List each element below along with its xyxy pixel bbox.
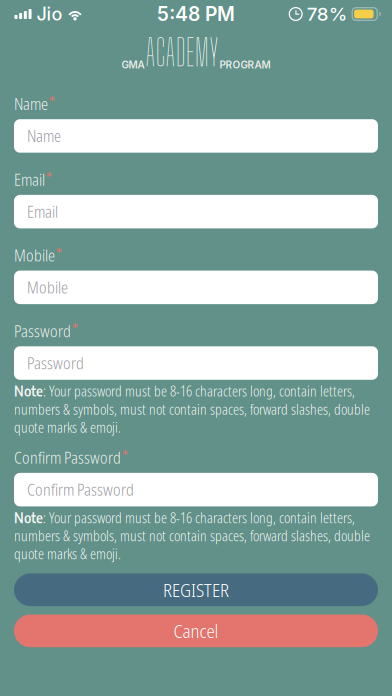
staticText: *	[48, 93, 55, 109]
staticText: *	[55, 244, 62, 261]
staticText: GMA	[121, 59, 144, 71]
staticText: *	[121, 447, 128, 463]
staticText: *	[71, 320, 78, 336]
staticText: Password	[14, 320, 71, 342]
staticText: Confirm Password	[27, 479, 134, 500]
staticText: Name	[27, 125, 61, 147]
staticText: Mobile	[27, 276, 68, 298]
staticText: ACADEMY	[145, 31, 218, 74]
staticText: PROGRAM	[219, 59, 270, 71]
staticText: Email	[27, 201, 58, 222]
staticText: 78%	[307, 3, 348, 25]
button[interactable]: Cancel	[14, 614, 378, 647]
staticText: *	[45, 169, 52, 185]
staticText: Note: Your password must be 8-16 charact…	[14, 382, 370, 436]
staticText: REGISTER	[163, 577, 229, 602]
staticText: Email	[14, 169, 45, 190]
staticText: Jio	[36, 3, 62, 25]
staticText: Confirm Password	[14, 447, 121, 468]
button[interactable]: REGISTER	[14, 573, 378, 606]
staticText: Name	[14, 93, 48, 115]
staticText: 5:48 PM	[157, 2, 235, 26]
staticText: Cancel	[173, 618, 218, 643]
staticText: Note: Your password must be 8-16 charact…	[14, 509, 370, 563]
staticText: Mobile	[14, 244, 55, 266]
staticText: Password	[27, 352, 84, 374]
